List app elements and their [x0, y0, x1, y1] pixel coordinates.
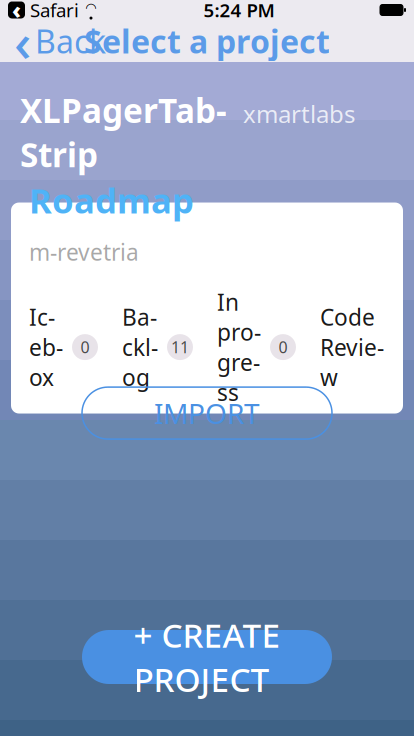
- staticText: + CREATE PROJECT: [133, 613, 280, 701]
- staticText: 5:24 PM: [203, 0, 274, 22]
- staticText: xmartlabs: [243, 98, 355, 130]
- staticText: Select a project: [84, 20, 330, 62]
- button[interactable]: IMPORT: [82, 387, 332, 439]
- staticText: XLPagerTabStrip: [20, 88, 227, 176]
- staticText: 0: [278, 336, 287, 358]
- staticText: m-revetria: [29, 237, 139, 267]
- staticText: Icebox: [29, 302, 63, 392]
- staticText: ‹: [14, 6, 31, 76]
- staticText: ◠: [86, 0, 96, 15]
- staticText: Roadmap: [29, 177, 194, 223]
- staticText: Backlog: [122, 302, 158, 392]
- button[interactable]: ‹: [4, 19, 116, 63]
- staticText: Back: [35, 20, 106, 62]
- staticText: In progress: [217, 287, 261, 407]
- staticText: 0: [80, 336, 89, 358]
- staticText: Safari: [30, 0, 79, 22]
- staticText: 11: [171, 336, 189, 358]
- staticText: IMPORT: [154, 394, 260, 432]
- button[interactable]: + CREATE PROJECT: [82, 630, 332, 684]
- staticText: Code Review: [320, 302, 384, 392]
- staticText: ‹: [12, 0, 21, 25]
